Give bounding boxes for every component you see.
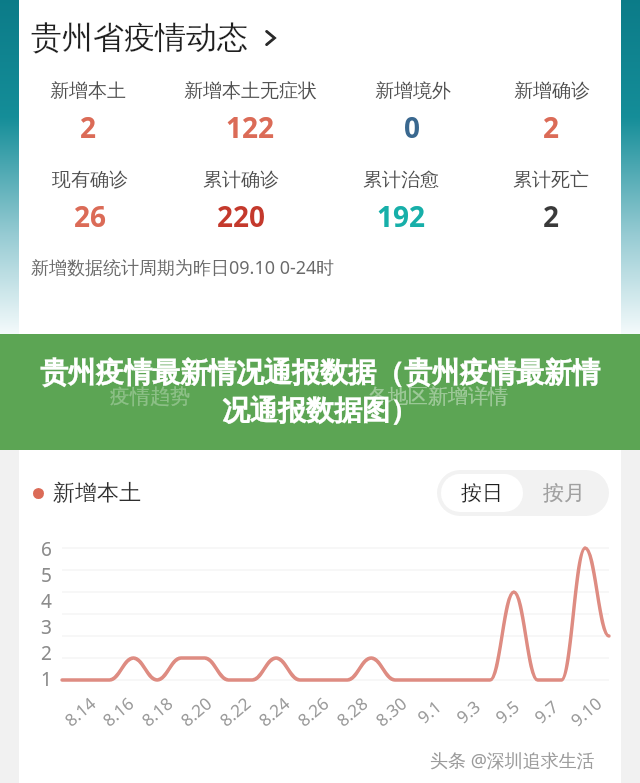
staticText: 192 — [377, 197, 426, 235]
staticText: 8.26 — [293, 692, 333, 731]
staticText: 累计治愈 — [363, 168, 439, 192]
staticText: 8.20 — [176, 692, 216, 731]
staticText: 累计确诊 — [203, 168, 279, 192]
staticText: 8.18 — [137, 692, 177, 731]
staticText: 9.1 — [412, 695, 446, 728]
staticText: 26 — [74, 197, 107, 235]
button[interactable]: 按日 — [441, 474, 523, 512]
staticText: 122 — [226, 108, 275, 146]
staticText: 新增本土无症状 — [184, 79, 317, 103]
staticText: 新增数据统计周期为昨日09.10 0-24时 — [31, 255, 335, 280]
button[interactable]: 贵州省疫情动态 — [31, 18, 282, 57]
staticText: 2 — [41, 640, 52, 666]
staticText: 各地区新增详情 — [368, 384, 508, 409]
staticText: 按月 — [543, 480, 585, 506]
staticText: 8.22 — [215, 692, 255, 731]
staticText: 8.14 — [60, 692, 100, 731]
staticText: 8.24 — [254, 692, 294, 731]
staticText: 8.28 — [332, 692, 372, 731]
staticText: 新增本土 — [53, 479, 141, 507]
staticText: 2 — [543, 197, 560, 235]
staticText: 累计死亡 — [513, 168, 589, 192]
staticText: 9.7 — [529, 695, 563, 728]
staticText: 头条 @深圳追求生活 — [430, 748, 595, 773]
staticText: 贵州疫情最新情况通报数据（贵州疫情最新情况通报数据图） — [40, 355, 600, 429]
staticText: 8.16 — [98, 692, 138, 731]
staticText: 9.10 — [566, 692, 606, 731]
staticText: 疫情趋势 — [110, 384, 190, 409]
staticText: 4 — [41, 588, 52, 614]
staticText: 贵州省疫情动态 — [31, 18, 248, 57]
staticText: 新增本土 — [50, 79, 126, 103]
staticText: 2 — [543, 108, 560, 146]
staticText: 6 — [41, 536, 52, 562]
button[interactable]: 按月 — [523, 474, 605, 512]
staticText: 1 — [41, 666, 52, 692]
staticText: 新增境外 — [375, 79, 451, 103]
staticText: 5 — [41, 562, 52, 588]
staticText: 9.5 — [490, 695, 524, 728]
staticText: 220 — [217, 197, 266, 235]
staticText: 按日 — [461, 480, 503, 506]
staticText: 2 — [80, 108, 97, 146]
staticText: 新增确诊 — [514, 79, 590, 103]
staticText: 3 — [41, 614, 52, 640]
staticText: 9.3 — [451, 695, 485, 728]
staticText: 8.30 — [371, 692, 411, 731]
staticText: 现有确诊 — [52, 168, 128, 192]
staticText: 0 — [404, 108, 421, 146]
